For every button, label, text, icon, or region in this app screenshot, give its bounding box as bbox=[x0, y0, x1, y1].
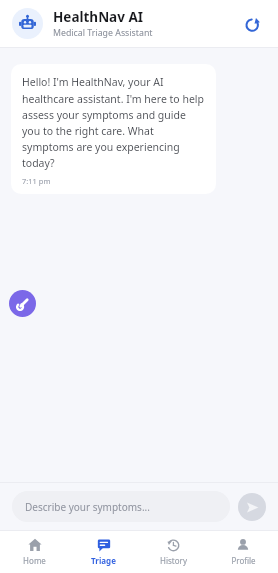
staticText: Describe your symptoms... bbox=[25, 500, 150, 514]
button[interactable]: Refresh conversation bbox=[238, 10, 266, 38]
button[interactable]: Home bbox=[0, 531, 69, 573]
staticText: Home bbox=[23, 555, 46, 566]
staticText: Medical Triage Assistant bbox=[53, 27, 153, 39]
button[interactable]: Tool running bbox=[9, 290, 36, 317]
staticText: Profile bbox=[231, 555, 256, 566]
staticText: History bbox=[160, 555, 187, 566]
button[interactable]: HealthNav AI assistant bbox=[12, 8, 43, 39]
staticText: Hello! I'm HealthNav, your AI healthcare… bbox=[22, 75, 205, 170]
button[interactable]: History bbox=[138, 531, 208, 573]
button[interactable]: Describe your symptoms... bbox=[12, 491, 230, 522]
button[interactable]: Profile bbox=[208, 531, 278, 573]
button[interactable]: Send message bbox=[238, 493, 266, 521]
staticText: Triage bbox=[91, 555, 116, 566]
staticText: 7:11 pm bbox=[22, 176, 51, 186]
button[interactable]: Hello! I'm HealthNav, your AI healthcare… bbox=[11, 64, 216, 194]
button[interactable]: Triage bbox=[69, 531, 138, 573]
staticText: HealthNav AI bbox=[53, 8, 144, 26]
